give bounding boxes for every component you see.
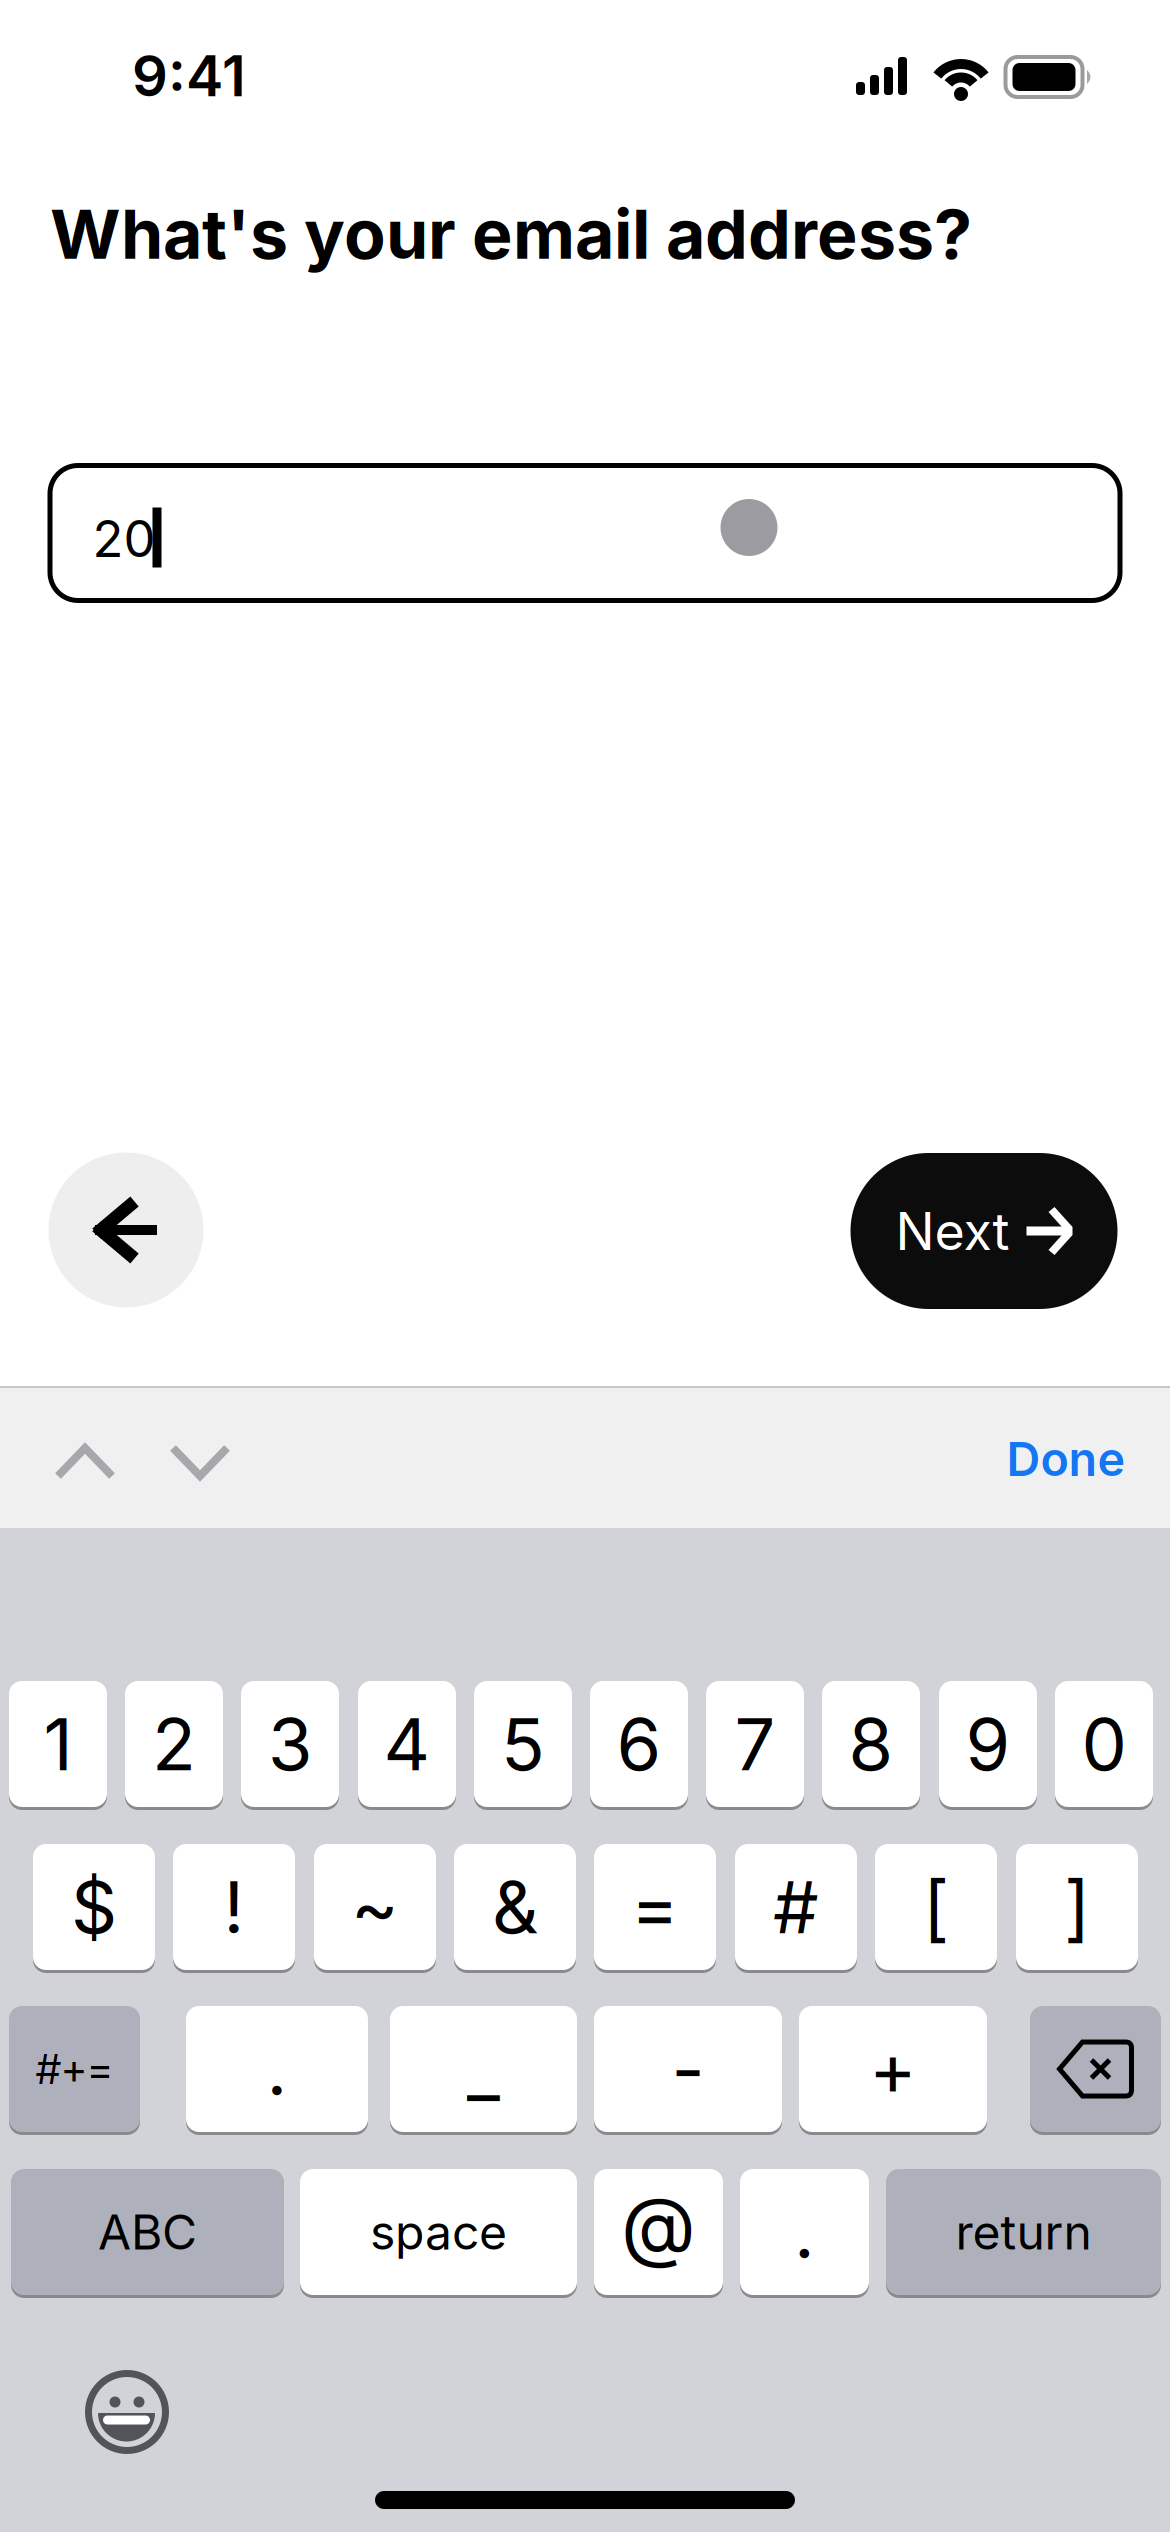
button[interactable]: space — [300, 2167, 577, 2296]
button[interactable]: ~ — [314, 1842, 436, 1971]
staticText: @ — [621, 2179, 696, 2271]
staticText: . — [794, 2189, 815, 2274]
staticText: Next — [895, 1200, 1009, 1262]
button[interactable]: Emoji — [85, 2370, 169, 2454]
staticText: space — [370, 2204, 507, 2260]
button[interactable]: 9 — [939, 1679, 1037, 1808]
staticText: ] — [1064, 1864, 1090, 1949]
button[interactable]: . — [740, 2167, 869, 2296]
staticText: . — [266, 2026, 287, 2111]
button[interactable]: $ — [33, 1842, 155, 1971]
button[interactable]: 0 — [1055, 1679, 1153, 1808]
staticText: ~ — [351, 1864, 399, 1949]
button[interactable]: #+= — [9, 2004, 140, 2133]
staticText: 6 — [616, 1701, 661, 1786]
button[interactable]: 1 — [9, 1679, 107, 1808]
button[interactable]: . — [186, 2004, 368, 2133]
staticText: _ — [467, 2026, 500, 2111]
staticText: ! — [223, 1864, 244, 1949]
button[interactable]: ! — [173, 1842, 295, 1971]
staticText: 7 — [734, 1701, 775, 1786]
staticText: ABC — [98, 2204, 197, 2260]
button[interactable]: Back — [48, 1152, 203, 1307]
staticText: return — [955, 2204, 1091, 2260]
button[interactable]: 8 — [822, 1679, 920, 1808]
button[interactable]: Done — [1006, 1431, 1125, 1487]
button[interactable]: # — [735, 1842, 857, 1971]
button[interactable]: ABC — [11, 2167, 284, 2296]
button[interactable]: + — [799, 2004, 987, 2133]
staticText: $ — [71, 1864, 117, 1949]
button[interactable]: Next field — [169, 1438, 231, 1482]
button[interactable]: [ — [875, 1842, 997, 1971]
staticText: What's your email address? — [50, 194, 972, 274]
button[interactable]: 2 — [125, 1679, 223, 1808]
button[interactable]: 3 — [241, 1679, 339, 1808]
staticText: 8 — [848, 1701, 893, 1786]
staticText: 5 — [501, 1701, 545, 1786]
button[interactable]: @ — [594, 2167, 723, 2296]
button[interactable]: ] — [1016, 1842, 1138, 1971]
button[interactable]: Previous field — [54, 1438, 116, 1482]
staticText: 4 — [383, 1701, 430, 1786]
staticText: 1 — [43, 1701, 72, 1786]
staticText: # — [773, 1864, 819, 1949]
staticText: + — [869, 2026, 917, 2111]
staticText: = — [631, 1864, 679, 1949]
button[interactable]: 4 — [358, 1679, 456, 1808]
button[interactable]: Next — [850, 1153, 1117, 1309]
button[interactable]: return — [886, 2167, 1161, 2296]
staticText: 0 — [1081, 1701, 1126, 1786]
staticText: - — [671, 2026, 704, 2111]
staticText: Done — [1006, 1431, 1125, 1487]
button[interactable]: 7 — [706, 1679, 804, 1808]
button[interactable]: 6 — [590, 1679, 688, 1808]
button[interactable]: = — [594, 1842, 716, 1971]
staticText: & — [492, 1864, 538, 1949]
button[interactable]: Delete — [1030, 2004, 1161, 2133]
button[interactable]: - — [594, 2004, 782, 2133]
button[interactable]: & — [454, 1842, 576, 1971]
button[interactable]: _ — [390, 2004, 577, 2133]
staticText: 2 — [152, 1701, 196, 1786]
staticText: 20 — [92, 509, 155, 568]
button[interactable]: 5 — [474, 1679, 572, 1808]
staticText: 3 — [268, 1701, 312, 1786]
staticText: 9 — [965, 1701, 1010, 1786]
staticText: #+= — [36, 2045, 113, 2093]
staticText: 9:41 — [132, 43, 246, 109]
staticText: [ — [923, 1864, 949, 1949]
